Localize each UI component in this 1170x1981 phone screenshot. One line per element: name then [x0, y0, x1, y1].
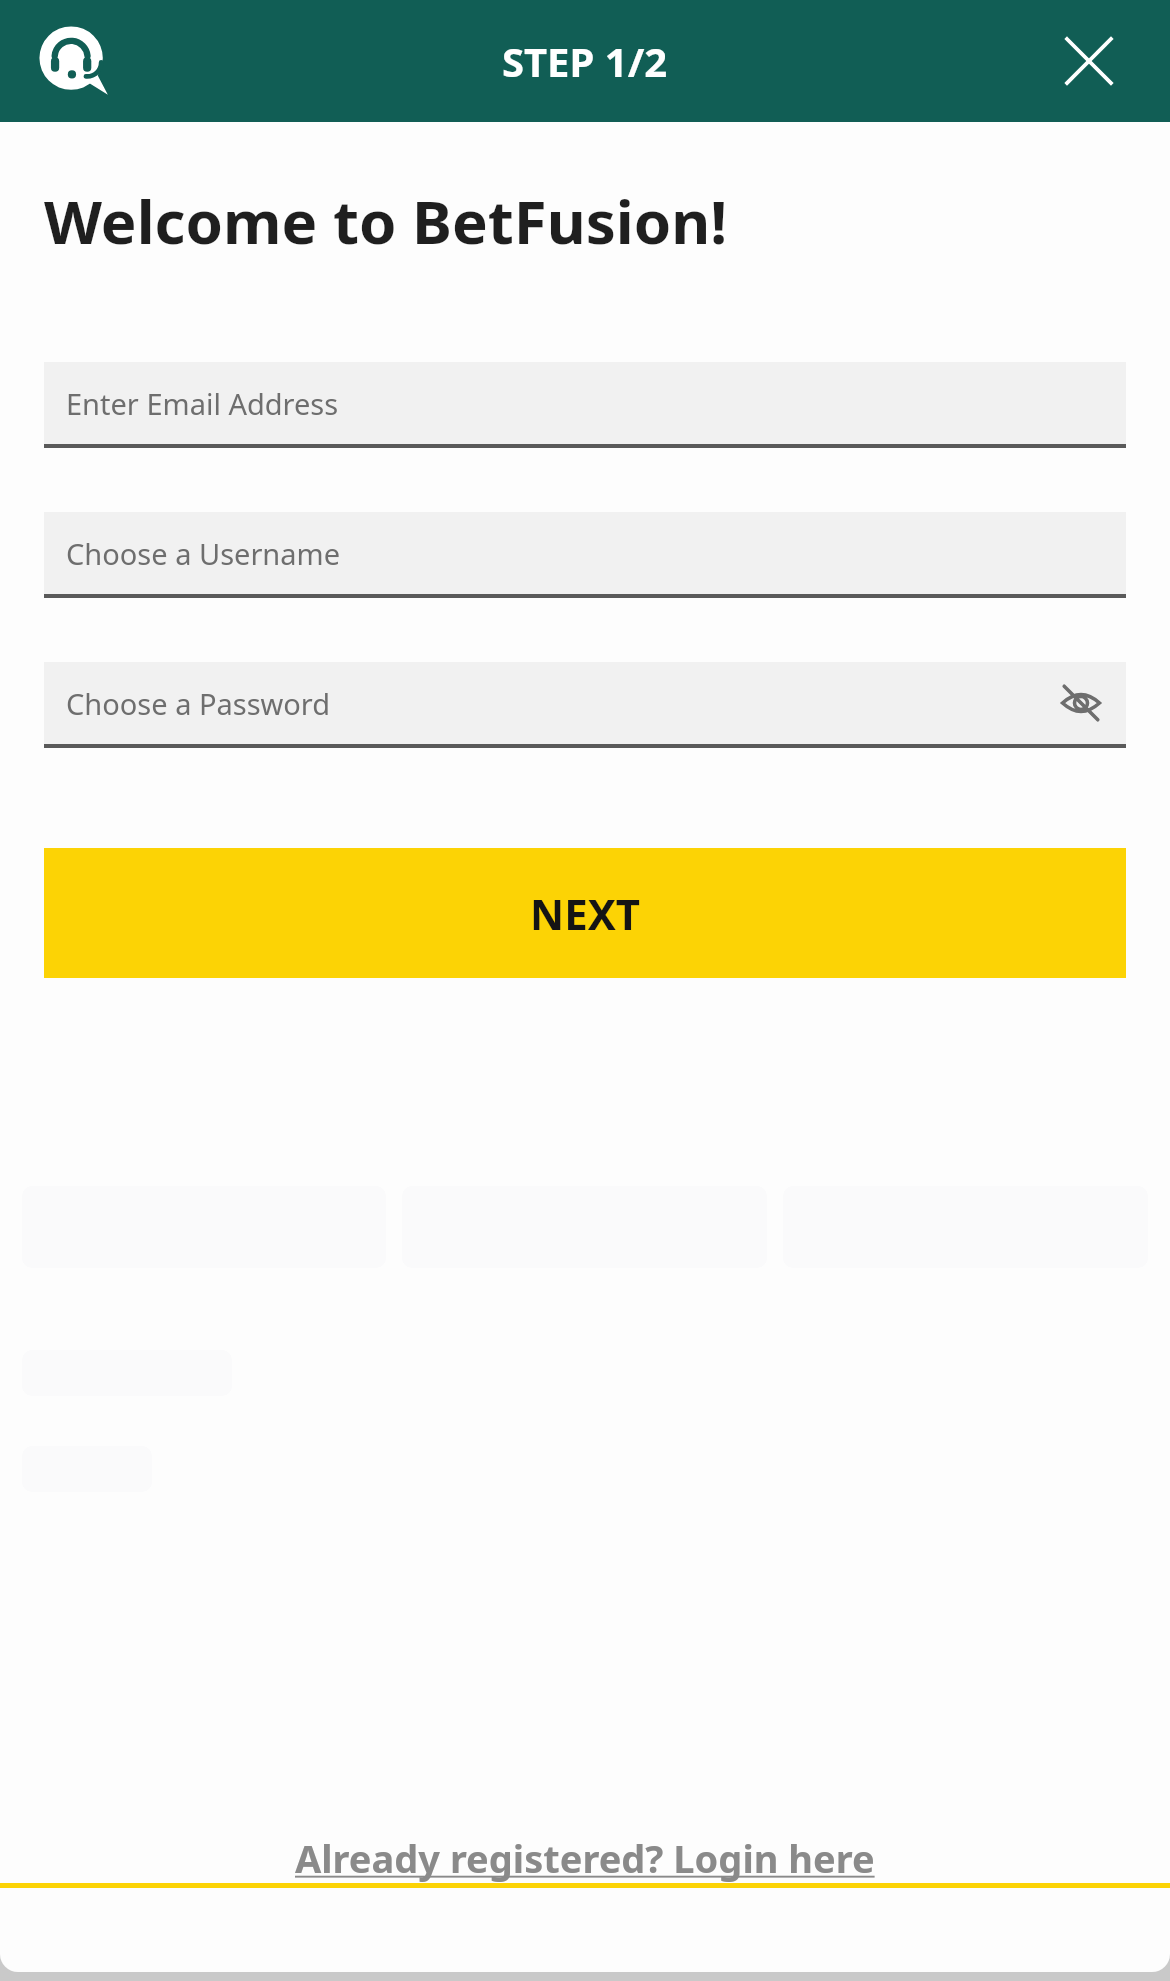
staticText: Enter Email Address — [66, 384, 339, 423]
staticText: Choose a Password — [66, 684, 331, 723]
button[interactable]: Show password — [1058, 680, 1104, 726]
button[interactable]: Choose a Password — [44, 662, 1126, 748]
staticText: Already registered? Login here — [295, 1832, 875, 1884]
staticText: Choose a Username — [66, 534, 341, 573]
button[interactable]: NEXT — [44, 848, 1126, 978]
button[interactable]: BetFusion support — [36, 23, 112, 99]
button[interactable]: Enter Email Address — [44, 362, 1126, 448]
button[interactable]: Choose a Username — [44, 512, 1126, 598]
button[interactable]: Close — [1056, 28, 1122, 94]
button[interactable]: Already registered? Login here — [0, 1832, 1170, 1884]
staticText: NEXT — [530, 885, 641, 942]
staticText: STEP 1/2 — [502, 34, 668, 88]
staticText: Welcome to BetFusion! — [44, 180, 728, 262]
